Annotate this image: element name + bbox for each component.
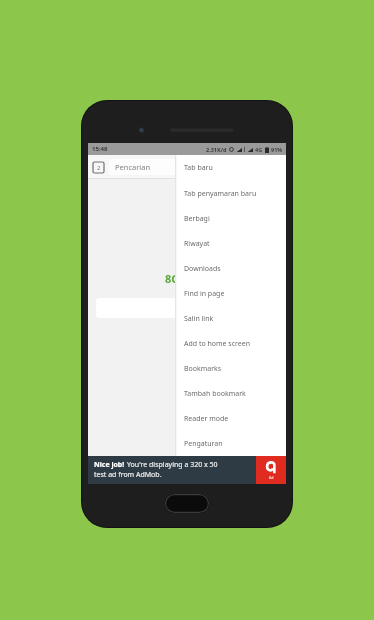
staticText: 2 [97, 164, 101, 172]
staticText: Downloads [184, 264, 221, 274]
button[interactable]: Tab baru [175, 155, 286, 181]
staticText: 91% [271, 146, 283, 153]
staticText: Find in page [184, 289, 225, 299]
button[interactable]: AdMob [256, 456, 286, 484]
button[interactable]: Pengaturan [175, 431, 286, 456]
button[interactable]: Berbagi [175, 206, 286, 231]
staticText: 8G [165, 271, 180, 286]
staticText: Bookmarks [184, 364, 222, 374]
staticText: 15:48 [92, 145, 108, 153]
button[interactable]: Tab penyamaran baru [175, 181, 286, 206]
button[interactable]: Salin link [175, 306, 286, 331]
button[interactable]: Nice job! [88, 456, 286, 484]
button[interactable]: Reader mode [175, 406, 286, 431]
staticText: 2,31K/d [206, 146, 227, 153]
staticText: Tab penyamaran baru [184, 189, 257, 199]
staticText: You're displaying a 320 x 50 [127, 460, 218, 470]
staticText: Tambah bookmark [184, 389, 246, 399]
staticText: Riwayat [184, 239, 210, 249]
staticText: Pengaturan [184, 439, 223, 449]
button[interactable]: Downloads [175, 256, 286, 281]
button[interactable]: Bookmarks [175, 356, 286, 381]
staticText: Reader mode [184, 414, 229, 424]
button[interactable]: Home [165, 494, 209, 513]
button[interactable]: Tabs [93, 162, 104, 173]
button[interactable] [96, 298, 278, 318]
staticText: Pencarian [115, 162, 151, 172]
staticText: Nice job! [94, 460, 125, 470]
button[interactable]: Add to home screen [175, 331, 286, 356]
button[interactable]: Pencarian [109, 159, 243, 175]
button[interactable]: Tambah bookmark [175, 381, 286, 406]
staticText: Berbagi [184, 214, 210, 224]
staticText: 4G [255, 146, 263, 153]
staticText: Tab baru [184, 163, 213, 173]
staticText: Salin link [184, 314, 214, 324]
button[interactable]: Find in page [175, 281, 286, 306]
staticText: test ad from AdMob. [94, 470, 162, 480]
button[interactable]: Riwayat [175, 231, 286, 256]
staticText: Add to home screen [184, 339, 251, 349]
staticText: Ad [269, 475, 274, 480]
